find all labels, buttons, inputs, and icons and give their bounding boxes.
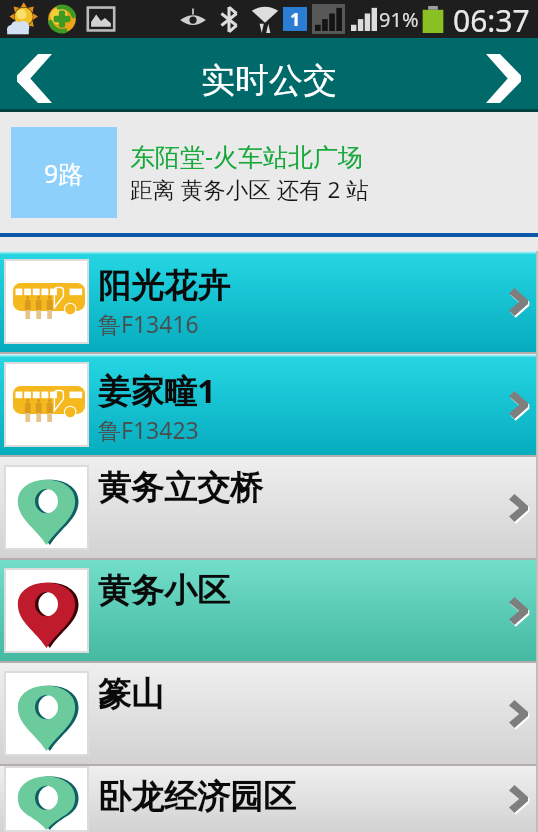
staticText: 阳光花卉 xyxy=(98,265,230,307)
button[interactable]: 9路 xyxy=(11,127,117,218)
staticText: 卧龙经济园区 xyxy=(98,776,296,818)
button[interactable]: Previous bus xyxy=(0,38,69,112)
button[interactable]: 卧龙经济园区 xyxy=(0,766,536,832)
button[interactable]: Open stop detail xyxy=(489,663,536,764)
button[interactable]: Open stop detail xyxy=(489,354,536,455)
staticText: 姜家疃1 xyxy=(98,368,216,413)
staticText: 91% xyxy=(379,6,419,33)
staticText: 1 xyxy=(290,7,301,31)
button[interactable]: 姜家疃1 xyxy=(0,354,536,455)
staticText: 9路 xyxy=(44,156,84,190)
button[interactable]: Open stop detail xyxy=(489,251,536,352)
button[interactable]: Open stop detail xyxy=(489,766,536,832)
staticText: 黄务小区 xyxy=(98,570,230,612)
staticText: 距离 黄务小区 还有 2 站 xyxy=(130,174,369,205)
staticText: 黄务立交桥 xyxy=(98,467,263,509)
button[interactable]: 阳光花卉 xyxy=(0,251,536,352)
staticText: 实时公交 xyxy=(201,59,337,102)
staticText: 鲁F13416 xyxy=(98,308,199,339)
button[interactable]: 黄务小区 xyxy=(0,560,536,661)
button[interactable]: Open stop detail xyxy=(489,560,536,661)
button[interactable]: Next bus xyxy=(469,38,538,112)
button[interactable]: Open stop detail xyxy=(489,457,536,558)
button[interactable]: 篆山 xyxy=(0,663,536,764)
staticText: 06:37 xyxy=(453,0,530,38)
staticText: 东陌堂-火车站北广场 xyxy=(130,139,364,173)
staticText: 鲁F13423 xyxy=(98,414,199,445)
staticText: 篆山 xyxy=(98,673,164,715)
button[interactable]: 黄务立交桥 xyxy=(0,457,536,558)
